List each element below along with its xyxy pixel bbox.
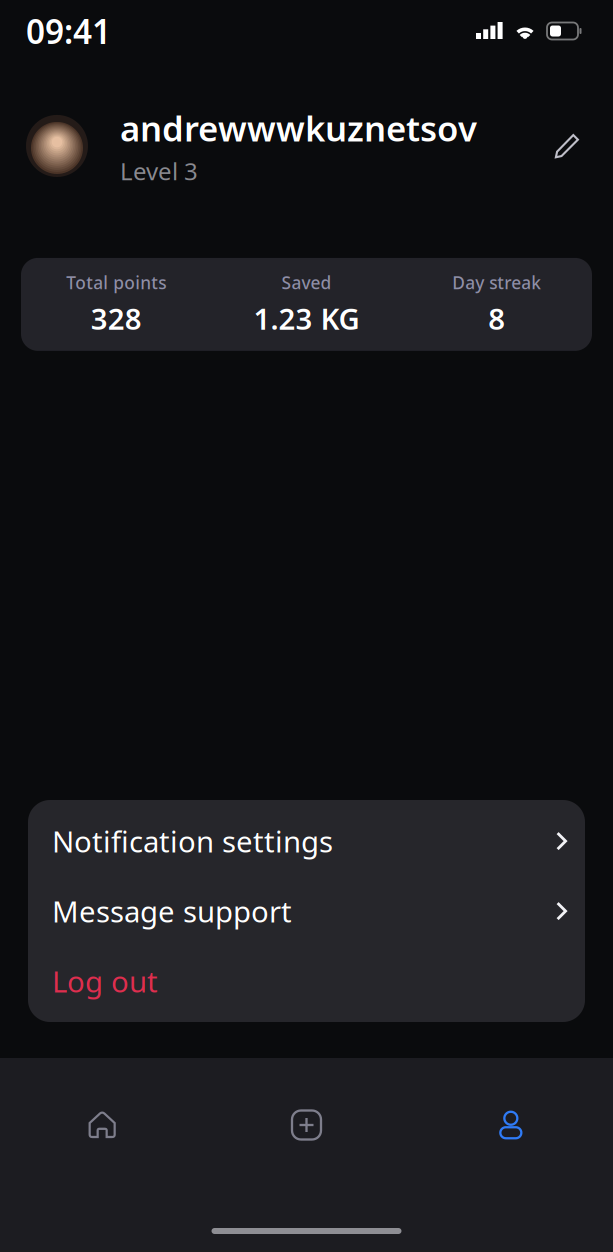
button[interactable]: Add [204,1098,409,1152]
staticText: Saved [281,271,331,294]
staticText: Notification settings [52,821,333,860]
button[interactable]: Home [0,1098,204,1152]
staticText: 328 [91,299,142,338]
staticText: Level 3 [120,155,198,187]
staticText: Day streak [452,271,541,294]
staticText: 8 [488,299,505,338]
button[interactable]: Notification settings [28,806,585,876]
button[interactable]: Profile [409,1098,613,1152]
staticText: Message support [52,891,292,930]
staticText: 09:41 [26,9,111,53]
button[interactable]: Message support [28,876,585,946]
button[interactable]: Log out [28,946,585,1016]
staticText: Log out [52,961,158,1000]
staticText: Total points [66,271,166,294]
button[interactable]: Edit profile [547,126,587,166]
staticText: andrewwwkuznetsov [120,105,477,151]
staticText: 1.23 KG [253,299,359,338]
